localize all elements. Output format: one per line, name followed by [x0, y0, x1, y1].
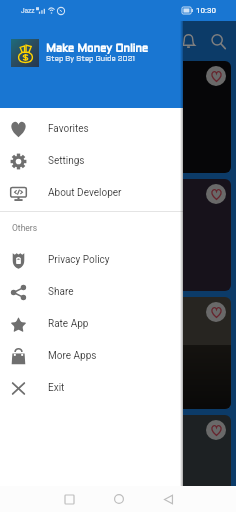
button[interactable]: Add to favourites — [5, 179, 231, 291]
button[interactable]: Settings — [0, 145, 183, 177]
button[interactable]: About Developer — [0, 177, 183, 209]
button[interactable]: Favorites — [0, 113, 183, 145]
button[interactable]: Share — [0, 276, 183, 308]
button[interactable]: Rate App — [0, 308, 183, 340]
button[interactable]: Back — [155, 486, 181, 512]
staticText: Share — [48, 286, 74, 298]
button[interactable]: Exit — [0, 372, 183, 404]
staticText: Rate App — [48, 318, 89, 330]
staticText: Exit — [48, 382, 65, 394]
button[interactable]: Add to favourites — [5, 61, 231, 173]
staticText: Privacy Policy — [48, 254, 110, 266]
staticText: Others — [12, 223, 38, 233]
button[interactable]: Add to favourites — [206, 184, 226, 204]
staticText: Step By Step Guide 2021 — [46, 56, 135, 63]
staticText: 10:30 — [196, 6, 216, 15]
button[interactable]: Recents — [56, 486, 82, 512]
button[interactable]: Add to favourites — [206, 302, 226, 322]
button[interactable]: Home — [106, 486, 132, 512]
staticText: Favorites — [48, 123, 89, 135]
button[interactable]: Privacy Policy — [0, 244, 183, 276]
staticText: Make Money Online — [46, 44, 149, 54]
staticText: About Developer — [48, 187, 122, 199]
staticText: More Apps — [48, 350, 97, 362]
staticText: Jazz — [21, 7, 35, 15]
button[interactable]: Add to favourites — [5, 297, 231, 409]
button[interactable]: Notifications — [174, 27, 202, 55]
button[interactable]: Add to favourites — [206, 66, 226, 86]
button[interactable]: Search — [204, 27, 232, 55]
button[interactable]: Add to favourites — [5, 415, 231, 512]
button[interactable]: Add to favourites — [206, 420, 226, 440]
button[interactable]: More Apps — [0, 340, 183, 372]
staticText: Settings — [48, 155, 85, 167]
